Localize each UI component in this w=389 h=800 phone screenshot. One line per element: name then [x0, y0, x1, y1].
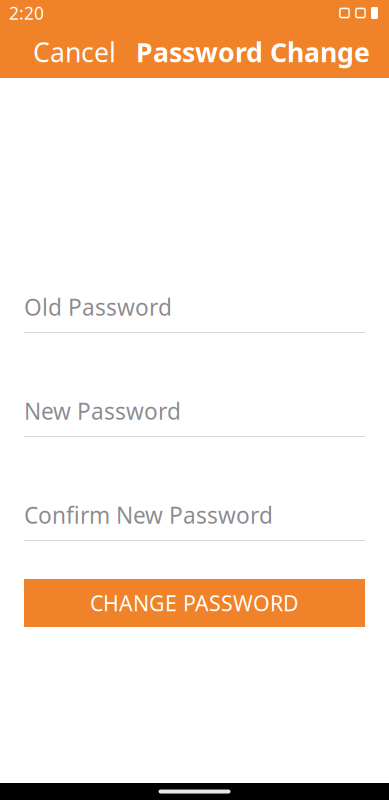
staticText: Cancel: [33, 34, 116, 70]
staticText: 2:20: [9, 1, 44, 24]
staticText: New Password: [24, 396, 181, 426]
button[interactable]: Cancel: [24, 26, 125, 78]
staticText: Old Password: [24, 292, 172, 322]
button[interactable]: CHANGE PASSWORD: [24, 579, 365, 627]
staticText: Password Change: [136, 34, 370, 70]
staticText: CHANGE PASSWORD: [90, 589, 299, 617]
staticText: Confirm New Password: [24, 500, 273, 530]
